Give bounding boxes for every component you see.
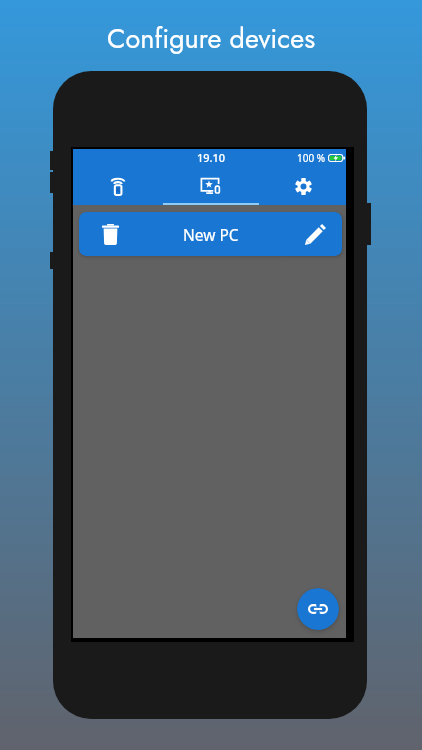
staticText: 100 %	[297, 151, 326, 165]
button[interactable]: Delete device	[88, 212, 133, 256]
button[interactable]: Edit device	[293, 212, 338, 256]
button[interactable]: Delete device	[79, 212, 342, 256]
button[interactable]: Settings	[259, 166, 346, 205]
button[interactable]: Link device	[297, 588, 339, 630]
button[interactable]: Remote	[73, 166, 163, 205]
button[interactable]: Devices	[163, 166, 259, 205]
staticText: New PC	[183, 224, 239, 245]
staticText: 19.10	[197, 150, 226, 165]
staticText: Configure devices	[107, 19, 316, 58]
